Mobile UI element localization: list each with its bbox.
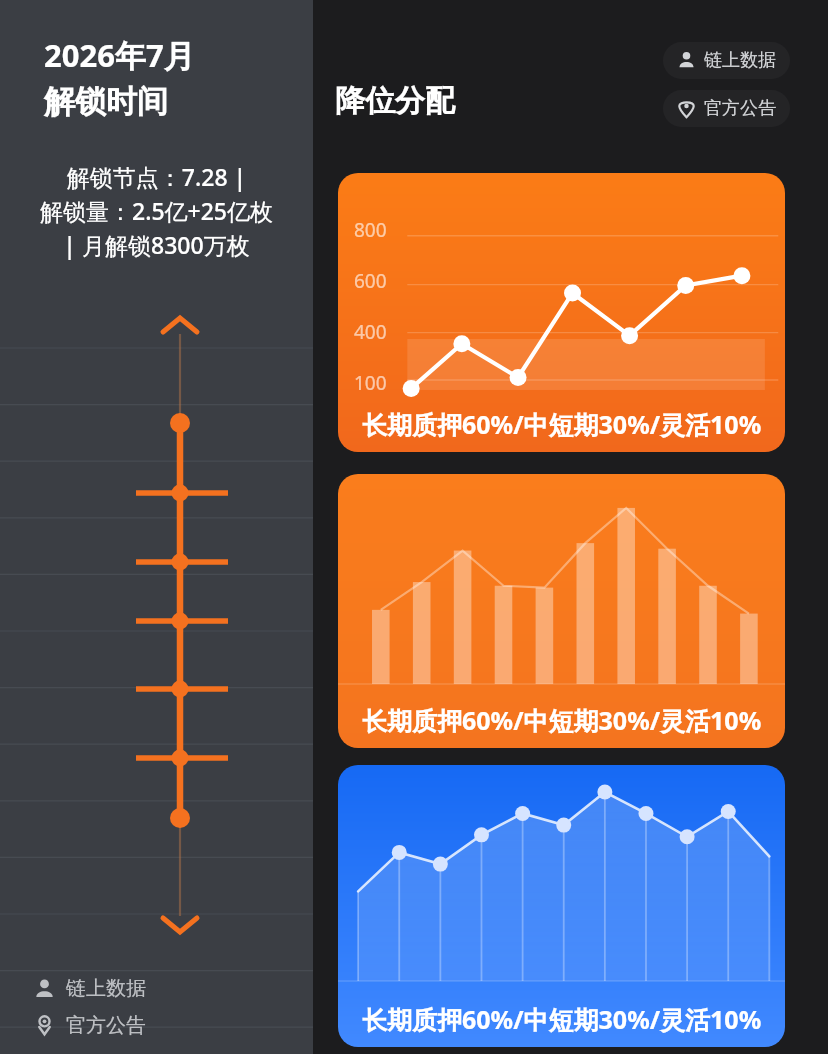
button[interactable]: 长期质押60%/中短期30%/灵活10% (338, 765, 785, 1047)
staticText: 官方公告 (704, 97, 776, 120)
staticText: 链上数据 (66, 976, 146, 1001)
staticText: 解锁时间 (44, 82, 168, 121)
staticText: 800 (354, 217, 387, 243)
staticText: 2026年7月 (44, 34, 195, 76)
staticText: 400 (354, 319, 387, 345)
other: 官方公告 (677, 99, 696, 118)
staticText: 链上数据 (704, 49, 776, 72)
other: 链上数据 (677, 51, 696, 70)
button[interactable]: 800 (338, 173, 785, 452)
other: 链上数据 (34, 978, 55, 999)
button[interactable]: 官方公告 (34, 1009, 146, 1042)
button[interactable]: 链上数据 (663, 42, 790, 79)
button[interactable]: 官方公告 (663, 90, 790, 127)
button[interactable]: 链上数据 (34, 972, 146, 1005)
button[interactable]: 长期质押60%/中短期30%/灵活10% (338, 474, 785, 748)
staticText: 长期质押60%/中短期30%/灵活10% (362, 703, 762, 737)
staticText: 解锁节点：7.28 | 解锁量：2.5亿+25亿枚 | 月解锁8300万枚 (14, 161, 299, 261)
staticText: 长期质押60%/中短期30%/灵活10% (362, 1002, 762, 1036)
staticText: 官方公告 (66, 1013, 146, 1038)
staticText: 600 (354, 268, 387, 294)
staticText: 降位分配 (335, 82, 455, 120)
staticText: 长期质押60%/中短期30%/灵活10% (362, 407, 762, 441)
staticText: 100 (354, 370, 387, 396)
other: 官方公告 (34, 1015, 55, 1036)
